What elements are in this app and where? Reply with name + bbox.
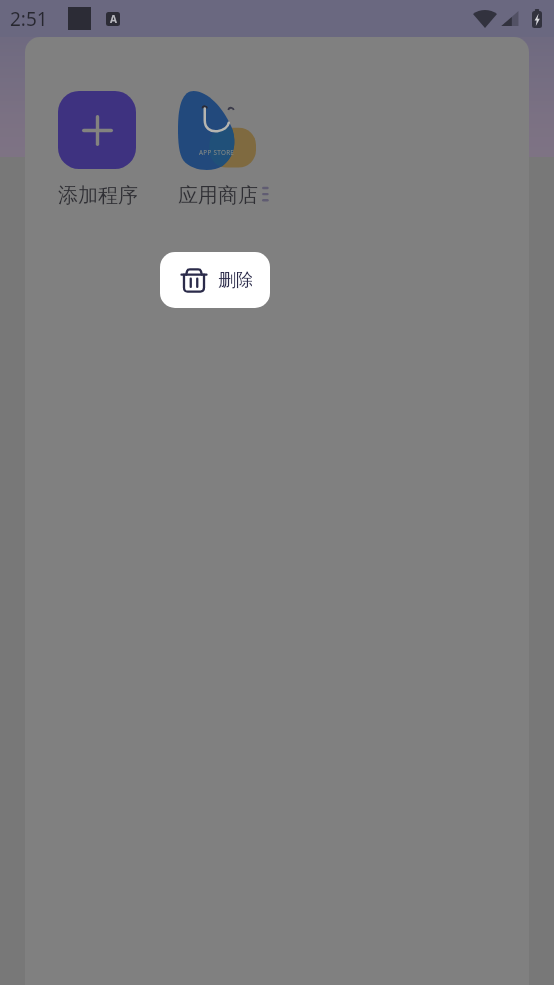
button[interactable]: 应用商店 xyxy=(178,91,256,169)
staticText: 2:51 xyxy=(10,6,48,32)
button[interactable]: 添加程序 xyxy=(58,91,136,169)
staticText: 删除 xyxy=(218,269,252,292)
staticText: 应用商店 xyxy=(178,183,258,208)
staticText: 添加程序 xyxy=(58,183,138,208)
staticText: APP STORE xyxy=(199,148,235,157)
button[interactable]: 删除 xyxy=(160,252,270,308)
staticText: A xyxy=(110,12,117,26)
